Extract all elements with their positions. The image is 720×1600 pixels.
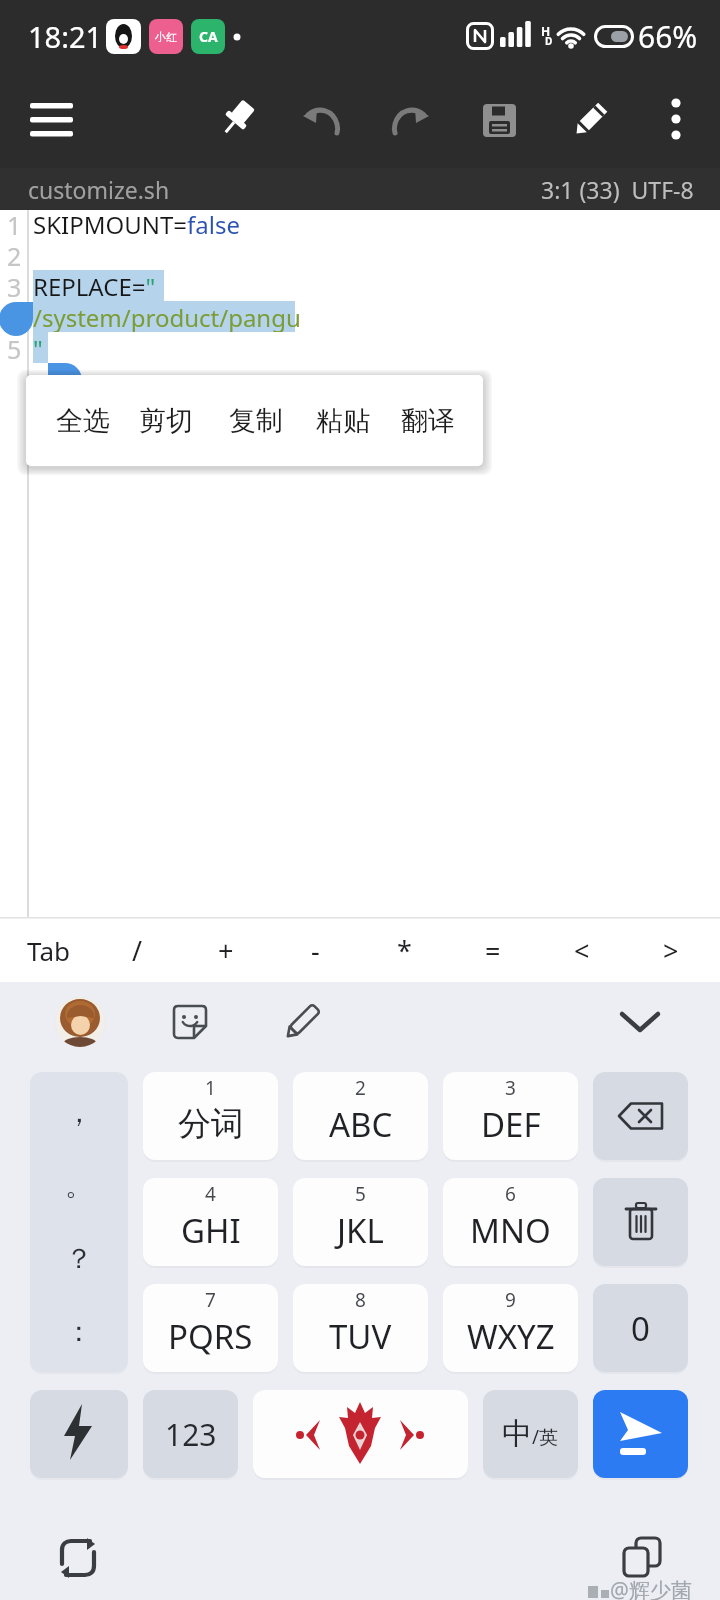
staticText: 5 (355, 1181, 366, 1205)
staticText: DEF (481, 1102, 541, 1147)
staticText: 66% (638, 16, 698, 57)
staticText: WXYZ (467, 1314, 555, 1359)
staticText: 7 (205, 1287, 216, 1311)
staticText: customize.sh (28, 174, 170, 205)
staticText: 2 (355, 1075, 366, 1099)
staticText: D (545, 34, 553, 47)
staticText: MNO (470, 1208, 551, 1253)
staticText: " (33, 332, 43, 363)
staticText: 1 (7, 208, 22, 239)
staticText: 9 (505, 1287, 516, 1311)
staticText: / (132, 932, 143, 969)
staticText: > (663, 932, 679, 969)
staticText: H (541, 23, 551, 36)
staticText: /system/product/pangu (33, 301, 301, 332)
staticText: 2 (7, 239, 22, 270)
staticText: JKL (337, 1208, 384, 1253)
staticText: 1 (205, 1075, 216, 1099)
staticText: GHI (181, 1208, 241, 1253)
staticText: CA (199, 27, 218, 46)
staticText: + (218, 932, 234, 969)
staticText: 剪切 (139, 404, 193, 438)
staticText: ： (65, 1314, 93, 1349)
staticText: 全选 (56, 404, 110, 438)
staticText: 0 (631, 1306, 650, 1351)
staticText: ABC (329, 1102, 393, 1147)
staticText: 6 (505, 1181, 516, 1205)
staticText: < (574, 932, 590, 969)
staticText: REPLACE=" (33, 270, 156, 301)
staticText: 3 (505, 1075, 516, 1099)
staticText: 粘贴 (316, 404, 370, 438)
staticText: ， (65, 1095, 93, 1130)
staticText: 4 (205, 1181, 216, 1205)
staticText: 123 (165, 1414, 217, 1455)
staticText: 3 (7, 270, 22, 301)
staticText: ？ (65, 1241, 93, 1276)
staticText: PQRS (168, 1314, 253, 1359)
staticText: 4 (7, 301, 22, 332)
staticText: 3:1 (33) UTF-8 (541, 174, 694, 205)
staticText: 8 (355, 1287, 366, 1311)
staticText: 复制 (229, 404, 283, 438)
staticText: SKIPMOUNT=false (33, 208, 240, 239)
staticText: - (311, 932, 320, 969)
staticText: @辉少菌 (610, 1576, 692, 1600)
staticText: 。 (65, 1168, 93, 1203)
staticText: 翻译 (401, 404, 455, 438)
staticText: 分词 (178, 1103, 244, 1145)
staticText: = (485, 932, 501, 969)
staticText: 18:21 (28, 17, 103, 56)
staticText: 小红 (155, 30, 177, 44)
staticText: TUV (329, 1314, 392, 1359)
staticText: 中/英 (502, 1415, 559, 1453)
staticText: Tab (27, 933, 70, 968)
staticText: 5 (7, 332, 22, 363)
staticText: * (397, 932, 412, 969)
